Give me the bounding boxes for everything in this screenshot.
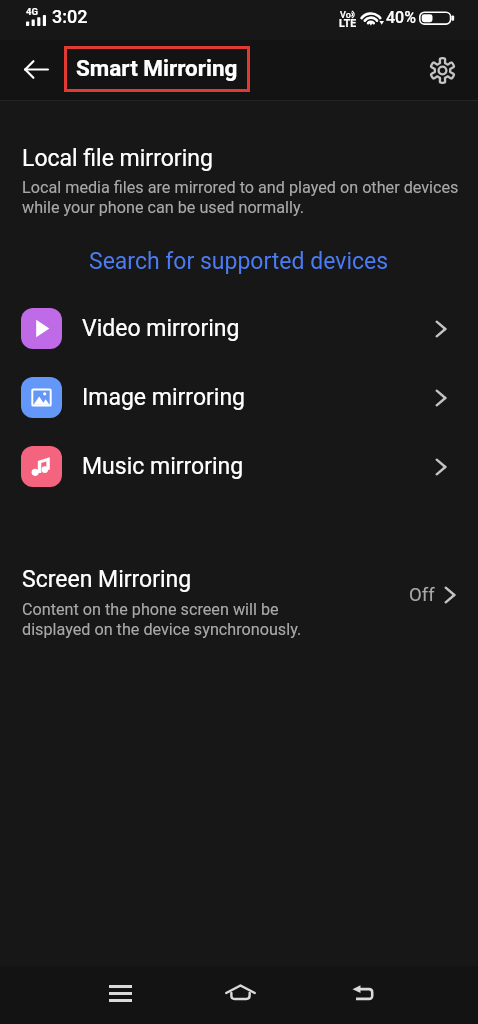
staticText: Vo (340, 10, 351, 21)
button[interactable]: Back (19, 52, 53, 86)
button[interactable]: Music mirroring (0, 434, 478, 499)
staticText: Music mirroring (82, 453, 244, 480)
button[interactable]: Image mirroring (0, 365, 478, 430)
staticText: Screen Mirroring (22, 566, 192, 593)
button[interactable]: Home (213, 966, 267, 1020)
button[interactable]: Settings (424, 52, 460, 88)
staticText: Local media files are mirrored to and pl… (22, 178, 459, 217)
button[interactable]: Screen Mirroring (0, 553, 478, 645)
button[interactable]: Search for supported devices (0, 242, 478, 280)
staticText: Search for supported devices (89, 248, 389, 275)
staticText: Local file mirroring (22, 145, 213, 172)
staticText: 40% (386, 8, 416, 27)
button[interactable]: Video mirroring (0, 296, 478, 361)
staticText: 4G (26, 6, 38, 17)
staticText: Smart Mirroring (76, 55, 238, 81)
staticText: LTE (339, 17, 357, 29)
staticText: Image mirroring (82, 384, 245, 411)
staticText: Video mirroring (82, 315, 240, 342)
staticText: 3:02 (52, 6, 88, 27)
button[interactable]: Recent apps (93, 966, 147, 1020)
staticText: Off (409, 584, 435, 606)
staticText: Content on the phone screen will be disp… (22, 600, 302, 639)
button[interactable]: Back (337, 966, 391, 1020)
